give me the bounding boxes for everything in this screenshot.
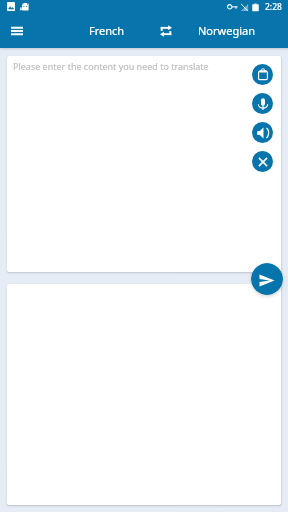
button[interactable]: Norwegian xyxy=(196,13,256,48)
button[interactable]: Swap languages xyxy=(136,13,196,48)
button[interactable]: Menu xyxy=(4,18,29,43)
staticText: French xyxy=(89,23,125,38)
staticText: Please enter the content you need to tra… xyxy=(13,60,209,72)
button[interactable]: Translation result xyxy=(7,284,281,505)
button[interactable]: Translate xyxy=(251,263,283,295)
button[interactable]: Source text input xyxy=(7,56,281,272)
button[interactable]: French xyxy=(77,13,136,48)
button[interactable]: Speak xyxy=(252,122,273,143)
button[interactable]: Clear xyxy=(252,151,273,172)
button[interactable]: Voice input xyxy=(252,93,273,114)
staticText: 2:28 xyxy=(265,1,282,13)
staticText: Norwegian xyxy=(198,23,255,38)
button[interactable]: Paste xyxy=(252,64,273,85)
